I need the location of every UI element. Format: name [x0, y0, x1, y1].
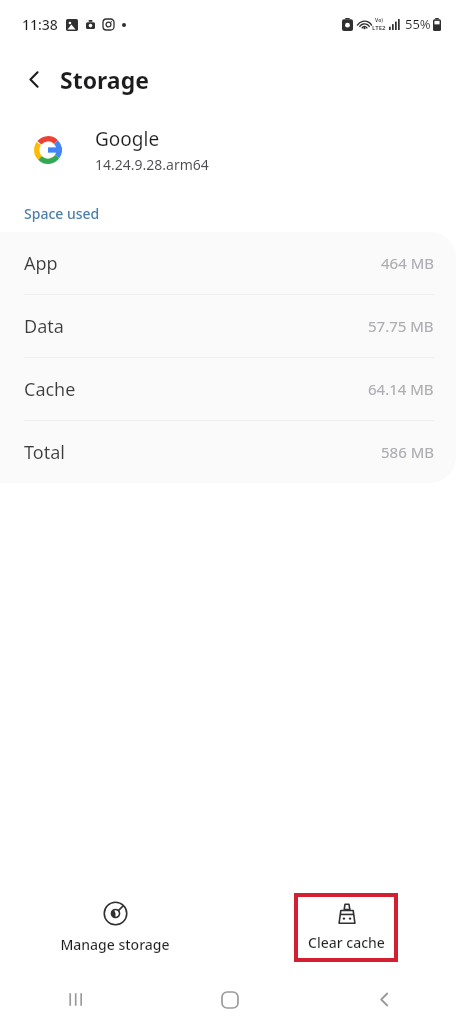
staticText: Data	[24, 314, 64, 339]
staticText: Vo)	[375, 17, 383, 24]
button[interactable]: Cache	[0, 358, 456, 420]
button[interactable]: Clear cache	[298, 897, 394, 958]
button[interactable]: Data	[0, 295, 456, 357]
staticText: Clear cache	[308, 933, 385, 952]
staticText: LTE2	[372, 24, 386, 32]
staticText: 14.24.9.28.arm64	[95, 155, 209, 174]
staticText: Cache	[24, 377, 76, 402]
button[interactable]: Total	[0, 421, 456, 483]
staticText: 55%	[405, 15, 431, 33]
staticText: Manage storage	[60, 935, 170, 954]
button[interactable]: Manage storage	[42, 893, 188, 962]
staticText: Storage	[60, 64, 149, 95]
button[interactable]: Recent apps	[0, 975, 153, 1024]
staticText: 64.14 MB	[368, 379, 434, 399]
staticText: 586 MB	[381, 442, 434, 462]
button[interactable]: Home	[153, 975, 307, 1024]
button[interactable]: App	[0, 232, 456, 294]
button[interactable]: Back	[14, 59, 54, 99]
staticText: 464 MB	[381, 253, 434, 273]
staticText: Space used	[24, 204, 100, 223]
staticText: Total	[24, 440, 65, 465]
staticText: App	[24, 251, 58, 276]
staticText: 57.75 MB	[368, 316, 434, 336]
staticText: Google	[95, 126, 160, 152]
staticText: 11:38	[22, 15, 58, 34]
button[interactable]: Back	[307, 975, 461, 1024]
